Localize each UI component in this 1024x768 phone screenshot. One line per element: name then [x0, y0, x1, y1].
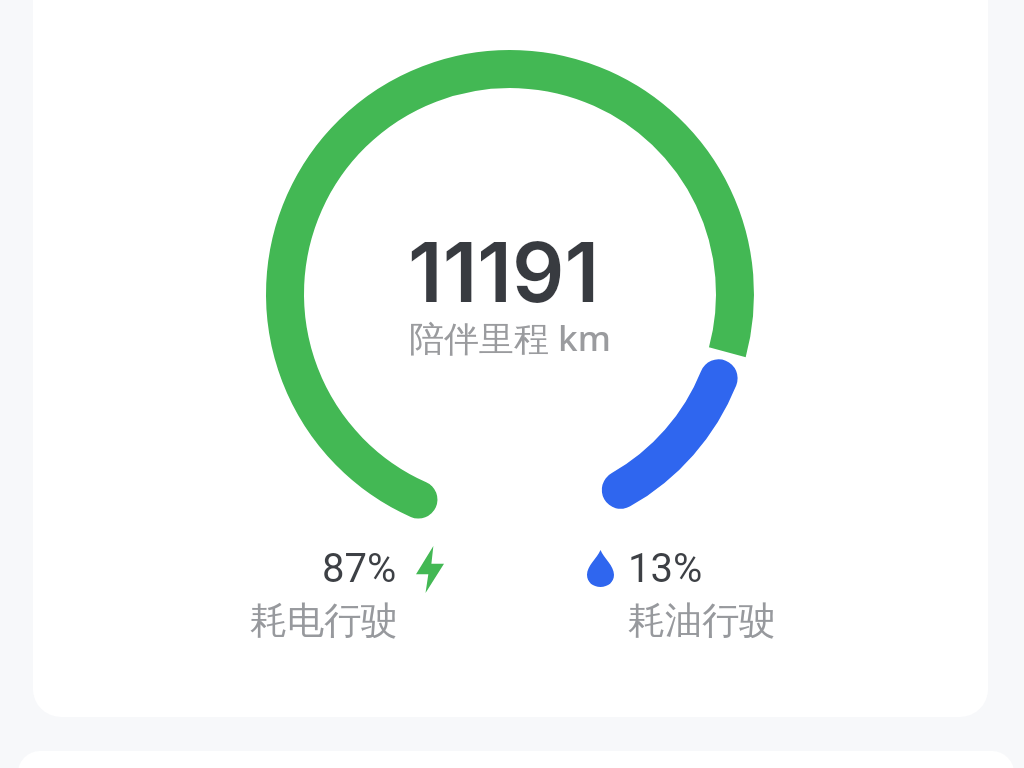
staticText: 耗电行驶: [250, 597, 398, 644]
staticText: 11191: [408, 223, 600, 322]
staticText: 陪伴里程 km: [409, 314, 611, 362]
staticText: 87%: [322, 545, 397, 592]
staticText: 13%: [628, 545, 703, 592]
staticText: 耗油行驶: [628, 597, 776, 644]
